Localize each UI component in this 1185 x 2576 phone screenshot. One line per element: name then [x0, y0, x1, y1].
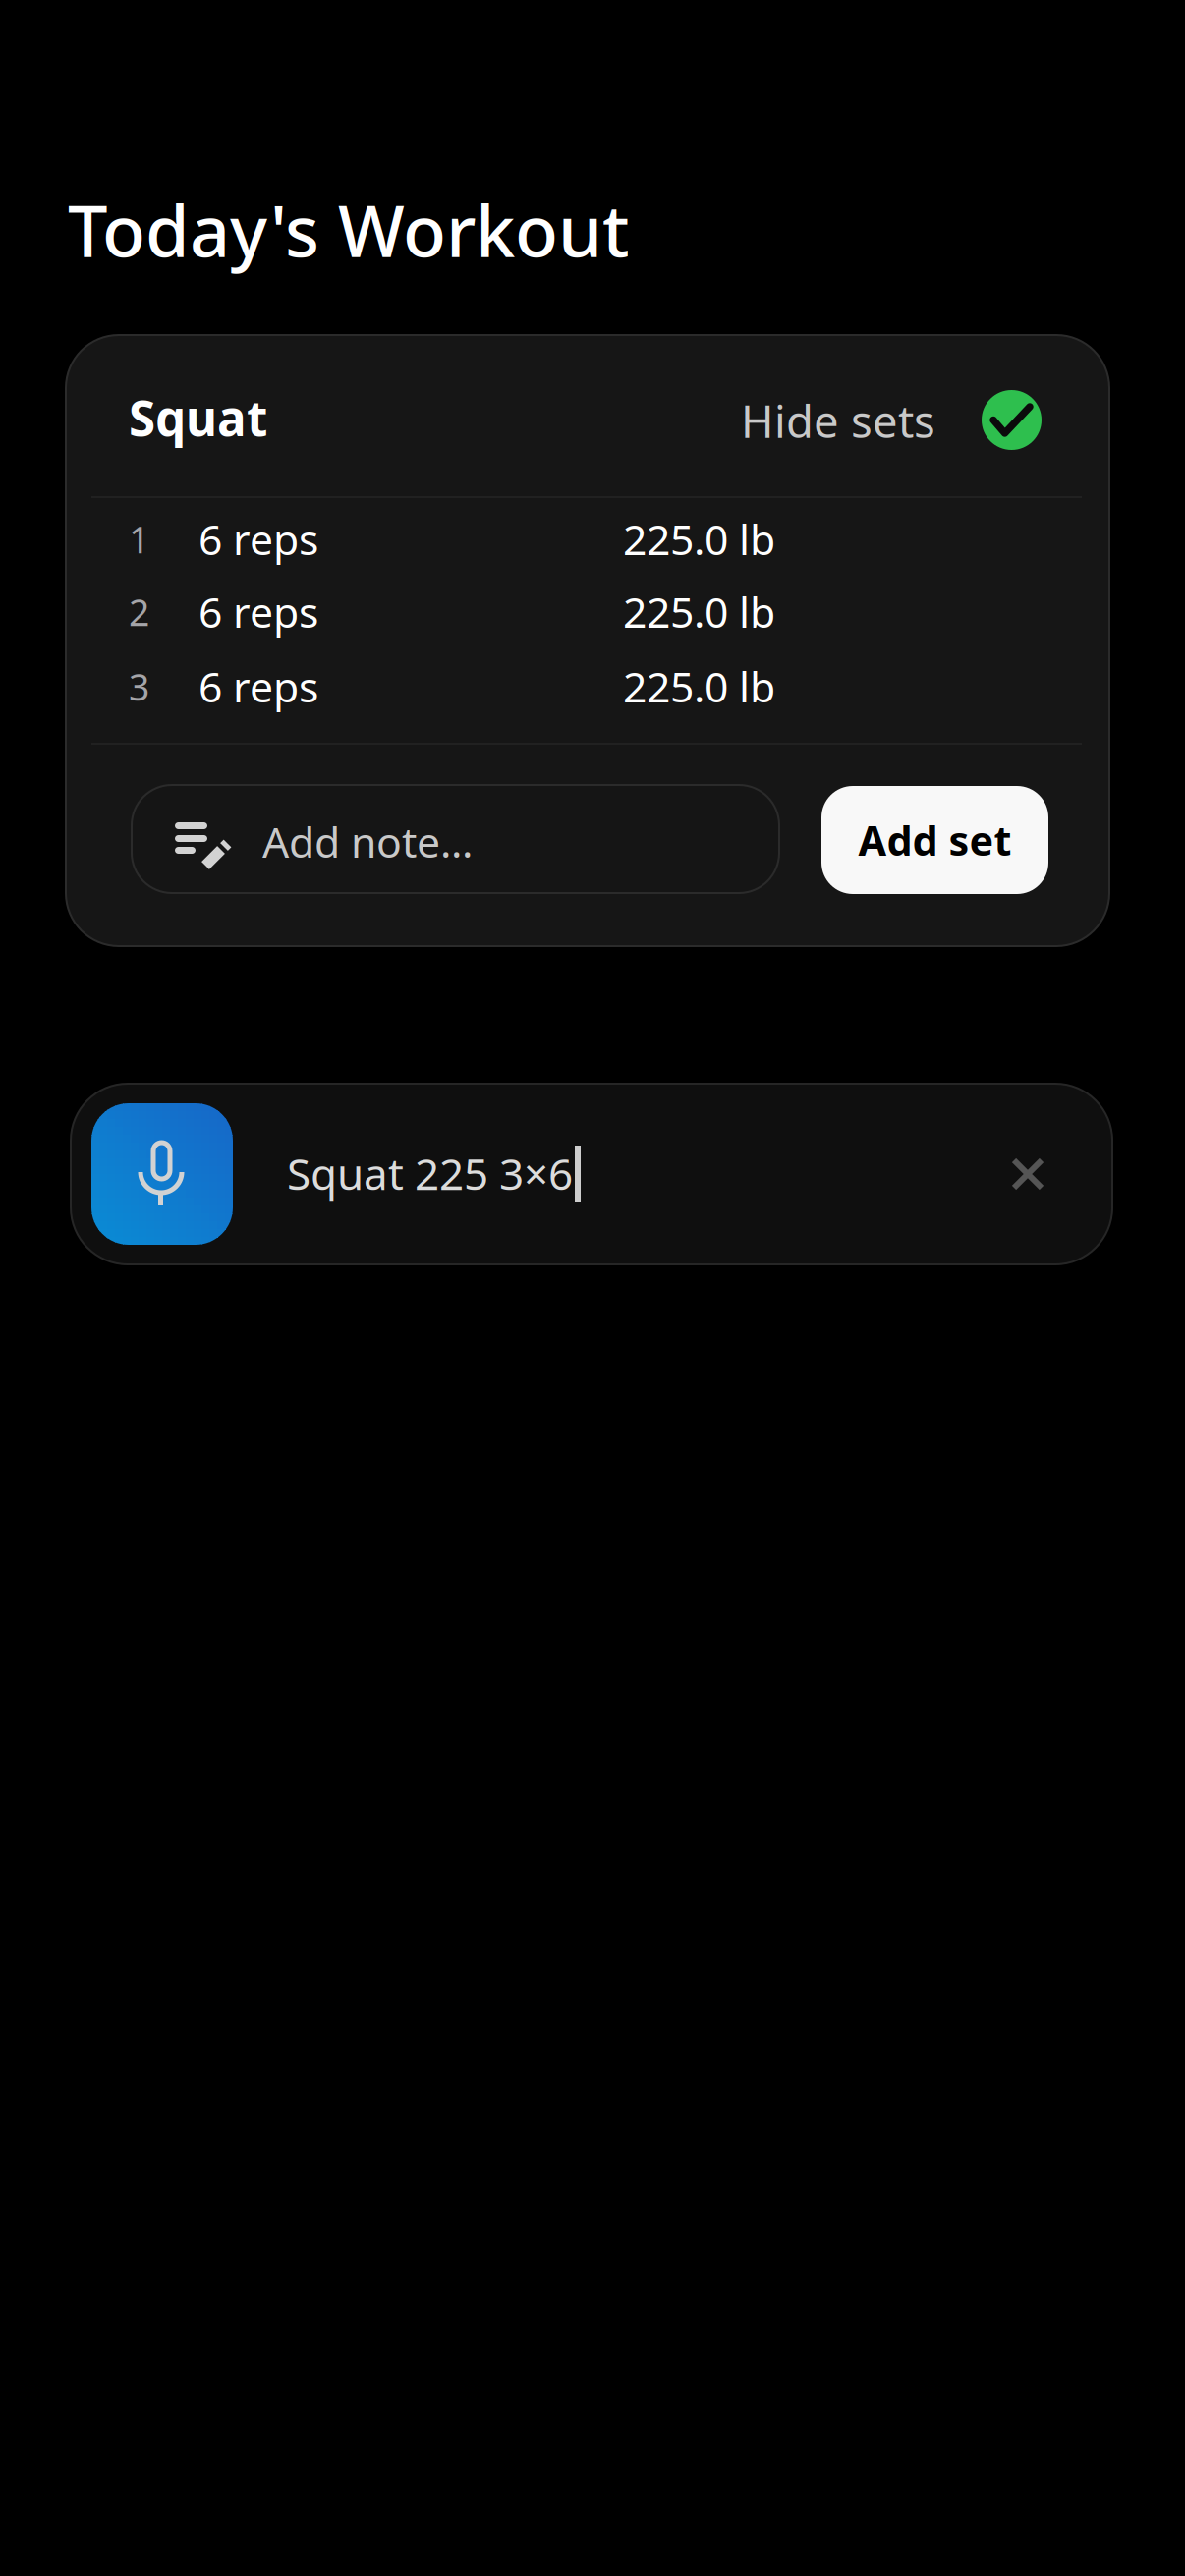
- button[interactable]: Add note...: [132, 785, 779, 893]
- staticText: 6 reps: [198, 658, 318, 714]
- button[interactable]: Add set: [821, 786, 1048, 894]
- button[interactable]: Hide sets: [745, 390, 1042, 450]
- button[interactable]: Clear: [983, 1129, 1073, 1219]
- staticText: 225.0 lb: [623, 511, 775, 567]
- staticText: Add note...: [262, 813, 473, 869]
- button[interactable]: Squat 225 3×6: [287, 1136, 945, 1244]
- staticText: 3: [129, 662, 149, 711]
- staticText: Today's Workout: [68, 183, 630, 277]
- staticText: Squat 225 3×6: [287, 1145, 573, 1202]
- staticText: Add set: [858, 813, 1012, 867]
- staticText: 225.0 lb: [623, 658, 775, 714]
- staticText: 2: [129, 588, 149, 636]
- staticText: 1: [129, 515, 149, 564]
- staticText: 6 reps: [198, 511, 318, 567]
- staticText: Squat: [129, 385, 267, 449]
- button[interactable]: Voice input: [91, 1103, 233, 1245]
- staticText: Hide sets: [741, 391, 935, 450]
- staticText: 6 reps: [198, 584, 318, 639]
- staticText: 225.0 lb: [623, 584, 775, 639]
